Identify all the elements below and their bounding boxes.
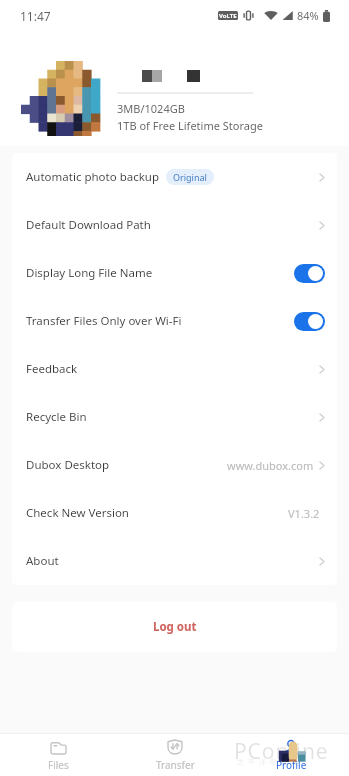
button[interactable]: Automatic photo backup <box>12 153 337 201</box>
staticText: Default Download Path <box>26 217 151 233</box>
staticText: Profile <box>276 758 307 772</box>
staticText: Recycle Bin <box>26 409 87 425</box>
staticText: www.dubox.com <box>227 458 314 473</box>
staticText: Log out <box>153 619 197 635</box>
staticText: Original <box>173 171 207 183</box>
staticText: Transfer <box>156 758 195 772</box>
button[interactable]: Check New Version <box>12 489 337 537</box>
button[interactable]: Display Long File Name <box>12 249 337 297</box>
button[interactable]: Files <box>0 734 117 776</box>
staticText: Transfer Files Only over Wi-Fi <box>26 313 182 329</box>
staticText: VoLTE <box>219 12 237 20</box>
staticText: 11:47 <box>20 8 51 24</box>
button[interactable]: Toggle setting <box>294 312 325 331</box>
staticText: Dubox Desktop <box>26 457 110 473</box>
button[interactable]: Recycle Bin <box>12 393 337 441</box>
staticText: About <box>26 553 59 569</box>
staticText: Display Long File Name <box>26 265 153 281</box>
staticText: Feedback <box>26 361 78 377</box>
staticText: Files <box>48 758 69 772</box>
button[interactable]: Profile <box>233 734 349 776</box>
staticText: PConline <box>234 737 329 766</box>
staticText: 太平洋电脑网 <box>235 757 301 767</box>
button[interactable]: Default Download Path <box>12 201 337 249</box>
button[interactable]: Transfer Files Only over Wi-Fi <box>12 297 337 345</box>
button[interactable]: About <box>12 537 337 585</box>
button[interactable]: Dubox Desktop <box>12 441 337 489</box>
staticText: 1TB of Free Lifetime Storage <box>117 118 263 133</box>
staticText: 84% <box>297 8 319 23</box>
button[interactable]: Transfer <box>117 734 233 776</box>
staticText: 3MB/1024GB <box>117 101 185 116</box>
button[interactable]: Feedback <box>12 345 337 393</box>
button[interactable]: Toggle setting <box>294 264 325 283</box>
staticText: Automatic photo backup <box>26 169 159 185</box>
button[interactable]: Log out <box>12 602 337 652</box>
staticText: Check New Version <box>26 505 129 521</box>
staticText: V1.3.2 <box>288 506 320 521</box>
